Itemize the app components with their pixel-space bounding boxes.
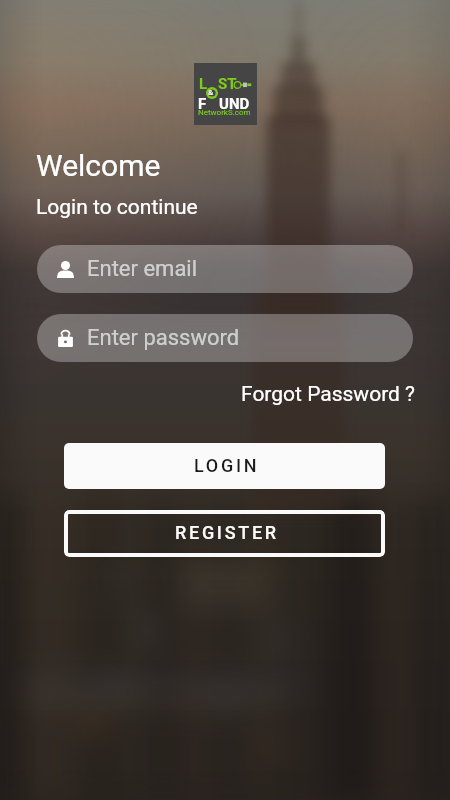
staticText: Welcome <box>36 148 161 183</box>
staticText: UND <box>219 95 250 113</box>
staticText: L <box>199 75 208 93</box>
staticText: Enter email <box>87 256 198 282</box>
staticText: LOGIN <box>194 455 260 476</box>
staticText: & <box>208 88 214 97</box>
staticText: Enter password <box>87 325 240 351</box>
staticText: ST <box>218 75 237 93</box>
staticText: Forgot Password ? <box>241 382 416 407</box>
staticText: NetworkS.com <box>198 108 251 117</box>
button[interactable]: Enter password <box>37 314 413 362</box>
button[interactable]: Enter email <box>37 245 413 293</box>
staticText: F <box>198 95 207 113</box>
button[interactable]: LOGIN <box>64 443 385 489</box>
staticText: Login to continue <box>36 195 198 220</box>
button[interactable]: REGISTER <box>64 510 385 557</box>
button[interactable]: Forgot Password ? <box>241 382 416 407</box>
staticText: REGISTER <box>175 522 279 543</box>
